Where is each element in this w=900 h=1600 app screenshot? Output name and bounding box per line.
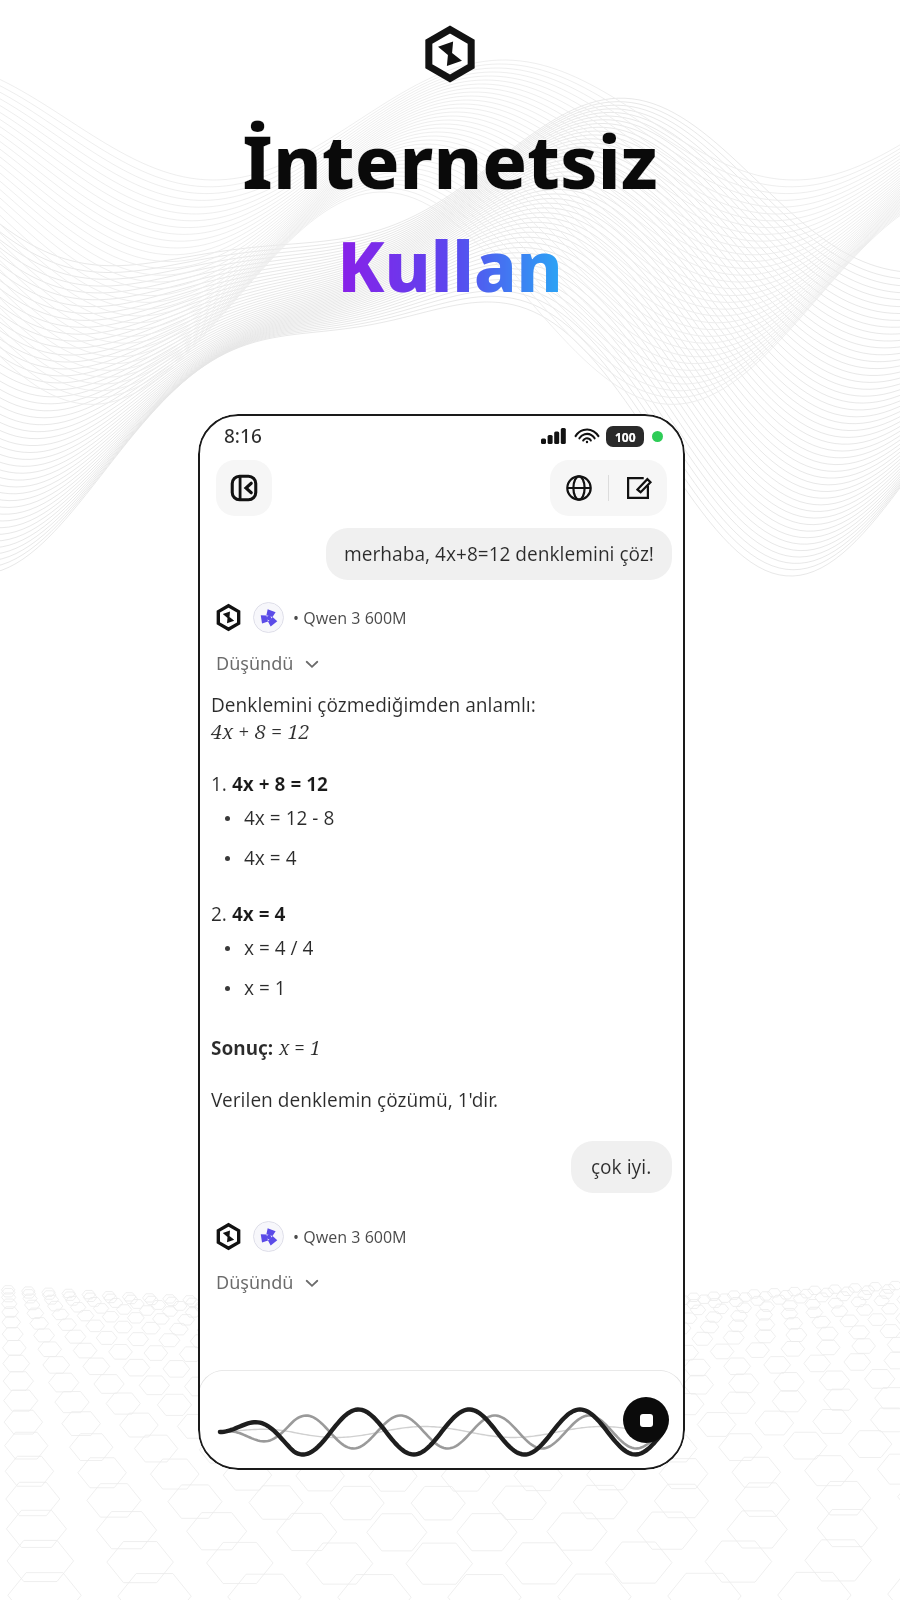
staticText: Denklemini çözmediğimden anlamlı: <box>211 692 536 718</box>
staticText: 2. <box>211 901 232 927</box>
staticText: 4x = 12 - 8 <box>244 805 335 831</box>
button[interactable]: Web search <box>550 460 608 516</box>
staticText: 4x = 4 <box>244 845 297 871</box>
staticText: 4x + 8 = 12 <box>211 718 310 745</box>
staticText: merhaba, 4x+8=12 denklemini çöz! <box>344 541 654 567</box>
staticText: • Qwen 3 600M <box>293 1226 407 1248</box>
button[interactable]: merhaba, 4x+8=12 denklemini çöz! <box>326 528 672 580</box>
staticText: Sonuç: <box>211 1035 279 1061</box>
button[interactable]: Stop recording <box>623 1397 669 1443</box>
staticText: x = 4 / 4 <box>244 935 314 961</box>
staticText: • Qwen 3 600M <box>293 607 407 629</box>
button[interactable]: New chat <box>609 460 667 516</box>
staticText: 100 <box>615 429 636 445</box>
staticText: 8:16 <box>224 423 262 449</box>
button[interactable]: çok iyi. <box>571 1141 672 1193</box>
staticText: Kullan <box>337 217 563 312</box>
button[interactable]: Düşündü <box>216 1270 319 1295</box>
staticText: çok iyi. <box>591 1154 652 1180</box>
staticText: 4x + 8 = 12 <box>232 771 328 797</box>
staticText: İnternetsiz <box>242 110 658 211</box>
staticText: Düşündü <box>216 1270 294 1295</box>
button[interactable]: Düşündü <box>216 651 319 676</box>
staticText: x = 1 <box>279 1035 321 1061</box>
staticText: Düşündü <box>216 651 294 676</box>
staticText: 4x = 4 <box>232 901 286 927</box>
staticText: x = 1 <box>244 975 286 1001</box>
staticText: Verilen denklemin çözümü, 1'dir. <box>211 1087 499 1113</box>
staticText: 1. <box>211 771 232 797</box>
button[interactable]: Toggle sidebar <box>216 460 272 516</box>
